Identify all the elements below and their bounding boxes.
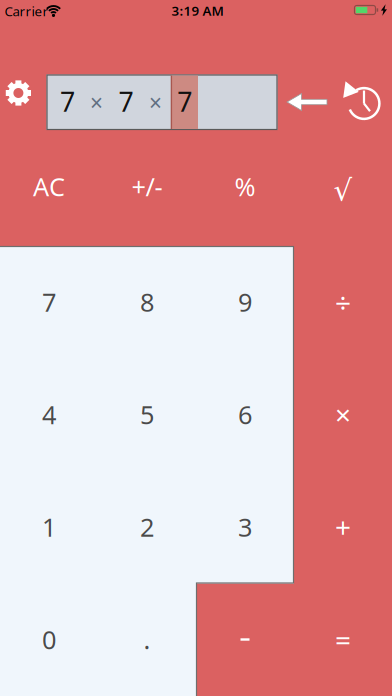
button[interactable]: 4 — [0, 358, 98, 470]
staticText: 5 — [140, 398, 154, 431]
staticText: 7 — [60, 84, 75, 119]
staticText: 7 — [177, 84, 192, 119]
button[interactable]: 9 — [196, 246, 294, 358]
button[interactable]: √ — [294, 147, 392, 233]
staticText: + — [335, 508, 351, 546]
staticText: AC — [33, 170, 65, 203]
button[interactable]: 6 — [196, 358, 294, 470]
button[interactable]: % — [196, 143, 294, 229]
staticText: √ — [333, 174, 352, 207]
button[interactable]: 5 — [98, 358, 196, 470]
button[interactable]: Subtract — [196, 583, 294, 695]
staticText: . — [143, 623, 150, 656]
staticText: +/- — [131, 170, 162, 203]
staticText: × — [90, 87, 103, 117]
button[interactable]: Backspace — [285, 90, 329, 114]
staticText: 9 — [238, 285, 252, 319]
button[interactable]: Settings — [3, 78, 33, 108]
staticText: 6 — [238, 398, 252, 431]
button[interactable]: 0 — [0, 583, 98, 695]
button[interactable]: . — [98, 583, 196, 695]
button[interactable]: + — [294, 471, 392, 583]
button[interactable]: 2 — [98, 471, 196, 583]
staticText: Carrier — [4, 2, 48, 20]
staticText: × — [149, 87, 162, 117]
staticText: 0 — [42, 623, 56, 656]
staticText: ÷ — [335, 283, 351, 321]
staticText: % — [234, 170, 255, 203]
staticText: 2 — [140, 510, 154, 544]
staticText: = — [335, 621, 351, 658]
button[interactable]: 1 — [0, 471, 98, 583]
button[interactable]: 3 — [196, 471, 294, 583]
staticText: 1 — [42, 510, 56, 544]
button[interactable]: × — [294, 358, 392, 470]
button[interactable]: 8 — [98, 246, 196, 358]
button[interactable]: AC — [0, 143, 98, 229]
staticText: 4 — [42, 398, 56, 431]
button[interactable]: = — [294, 583, 392, 695]
staticText: 7 — [42, 285, 56, 319]
staticText: 7 — [118, 84, 133, 119]
button[interactable]: 7 — [0, 246, 98, 358]
staticText: × — [335, 396, 351, 433]
staticText: 3:19 AM — [171, 2, 223, 19]
staticText: 8 — [140, 285, 154, 319]
button[interactable]: +/- — [98, 143, 196, 229]
staticText: 3 — [238, 510, 252, 544]
button[interactable]: History — [342, 81, 386, 125]
button[interactable]: ÷ — [294, 246, 392, 358]
